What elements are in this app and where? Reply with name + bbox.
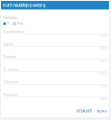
staticText: El. paštas xyxy=(3,67,19,71)
staticText: KURTI xyxy=(97,109,107,113)
button[interactable]: Vardas xyxy=(3,41,107,53)
button[interactable]: P-ia xyxy=(13,22,23,25)
staticText: Kreipinys xyxy=(3,15,18,19)
staticText: ATŠAUKTI xyxy=(76,109,92,113)
button[interactable]: KURTI xyxy=(97,108,107,114)
staticText: 0/50 xyxy=(100,72,107,75)
staticText: P. xyxy=(7,22,10,25)
button[interactable]: ATŠAUKTI xyxy=(76,108,92,114)
button[interactable]: Telefonas xyxy=(3,78,107,91)
staticText: Telefonas xyxy=(3,80,19,84)
button[interactable]: Pavardė xyxy=(3,53,107,66)
staticText: 0/20 xyxy=(100,85,107,88)
staticText: P-ia xyxy=(17,22,23,25)
staticText: Pavardė xyxy=(3,55,16,59)
staticText: Pareigos xyxy=(3,93,17,97)
button[interactable]: El. paštas xyxy=(3,66,107,78)
button[interactable]: P. xyxy=(3,22,10,25)
staticText: Vardas xyxy=(3,42,14,46)
staticText: 0/50 xyxy=(100,47,107,50)
button[interactable]: Pareigos xyxy=(3,91,107,104)
staticText: 0/50 xyxy=(100,59,107,63)
staticText: 0/50 xyxy=(100,34,107,38)
staticText: 0/50 xyxy=(100,97,107,101)
staticText: Kurti naudotojo paskyrą xyxy=(3,3,45,8)
button[interactable]: Pavadinimas xyxy=(3,28,107,41)
staticText: Pavadinimas xyxy=(3,30,24,34)
